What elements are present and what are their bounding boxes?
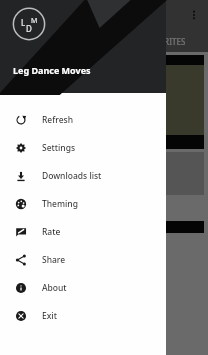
staticText: View Vid xyxy=(10,179,40,189)
staticText: Leg Dance Moves xyxy=(13,64,91,76)
staticText: M xyxy=(31,16,38,26)
button[interactable]: Exit xyxy=(0,302,166,330)
staticText: 9 xyxy=(8,87,20,114)
staticText: Share xyxy=(42,254,66,266)
staticText: Refresh xyxy=(42,114,74,126)
staticText: Rate xyxy=(42,226,61,238)
button[interactable]: Theming xyxy=(0,190,166,218)
button[interactable]: Refresh xyxy=(0,106,166,134)
staticText: D xyxy=(26,23,32,34)
button[interactable]: Rate xyxy=(0,218,166,246)
button[interactable]: Share xyxy=(0,246,166,274)
staticText: Theming xyxy=(42,198,78,210)
button[interactable]: Settings xyxy=(0,134,166,162)
staticText: L xyxy=(21,17,26,28)
staticText: FAVORITES xyxy=(144,36,186,47)
button[interactable]: About xyxy=(0,274,166,302)
staticText: Exit xyxy=(42,310,57,322)
staticText: Downloads list xyxy=(42,170,102,182)
button[interactable]: More options xyxy=(185,6,203,24)
staticText: Settings xyxy=(42,142,76,154)
staticText: About xyxy=(42,282,67,294)
button[interactable]: Downloads list xyxy=(0,162,166,190)
